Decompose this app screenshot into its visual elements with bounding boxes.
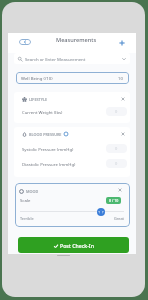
button[interactable]: Current Weight (lbs): [22, 105, 127, 118]
button[interactable]: Remove section: [116, 186, 124, 194]
staticText: Measurements: [56, 36, 97, 44]
staticText: 0: [115, 146, 118, 151]
staticText: Current Weight (lbs): [22, 109, 63, 115]
button[interactable]: Remove section: [119, 95, 127, 103]
staticText: 10: [118, 75, 123, 81]
button[interactable]: Post Check-In: [18, 237, 129, 253]
button[interactable]: Add measurement: [117, 38, 127, 48]
staticText: Post Check-In: [60, 242, 94, 249]
button[interactable]: Systolic Pressure (mmHg): [22, 142, 127, 155]
staticText: Search or Enter Measurement: [25, 56, 86, 62]
button[interactable]: Mood slider: [97, 208, 105, 216]
staticText: 0: [115, 109, 118, 114]
staticText: Great: [114, 216, 124, 221]
staticText: 8 / 10: [109, 198, 119, 203]
button[interactable]: Info: [63, 131, 69, 137]
staticText: LIFESTYLE: [29, 97, 48, 102]
staticText: Well Being (/10): [21, 75, 53, 81]
staticText: Terrible: [20, 216, 34, 221]
staticText: 0: [115, 161, 118, 166]
staticText: Scale: [20, 197, 31, 203]
button[interactable]: Remove section: [119, 130, 127, 138]
button[interactable]: Search or Enter Measurement: [14, 53, 130, 64]
staticText: BLOOD PRESSURE: [29, 132, 62, 137]
button[interactable]: Diastolic Pressure (mmHg): [22, 157, 127, 170]
staticText: Diastolic Pressure (mmHg): [22, 161, 76, 167]
staticText: Systolic Pressure (mmHg): [22, 146, 74, 152]
button[interactable]: Well Being (/10): [16, 72, 129, 84]
button[interactable]: Back: [19, 39, 31, 45]
staticText: MOOD: [26, 189, 39, 194]
